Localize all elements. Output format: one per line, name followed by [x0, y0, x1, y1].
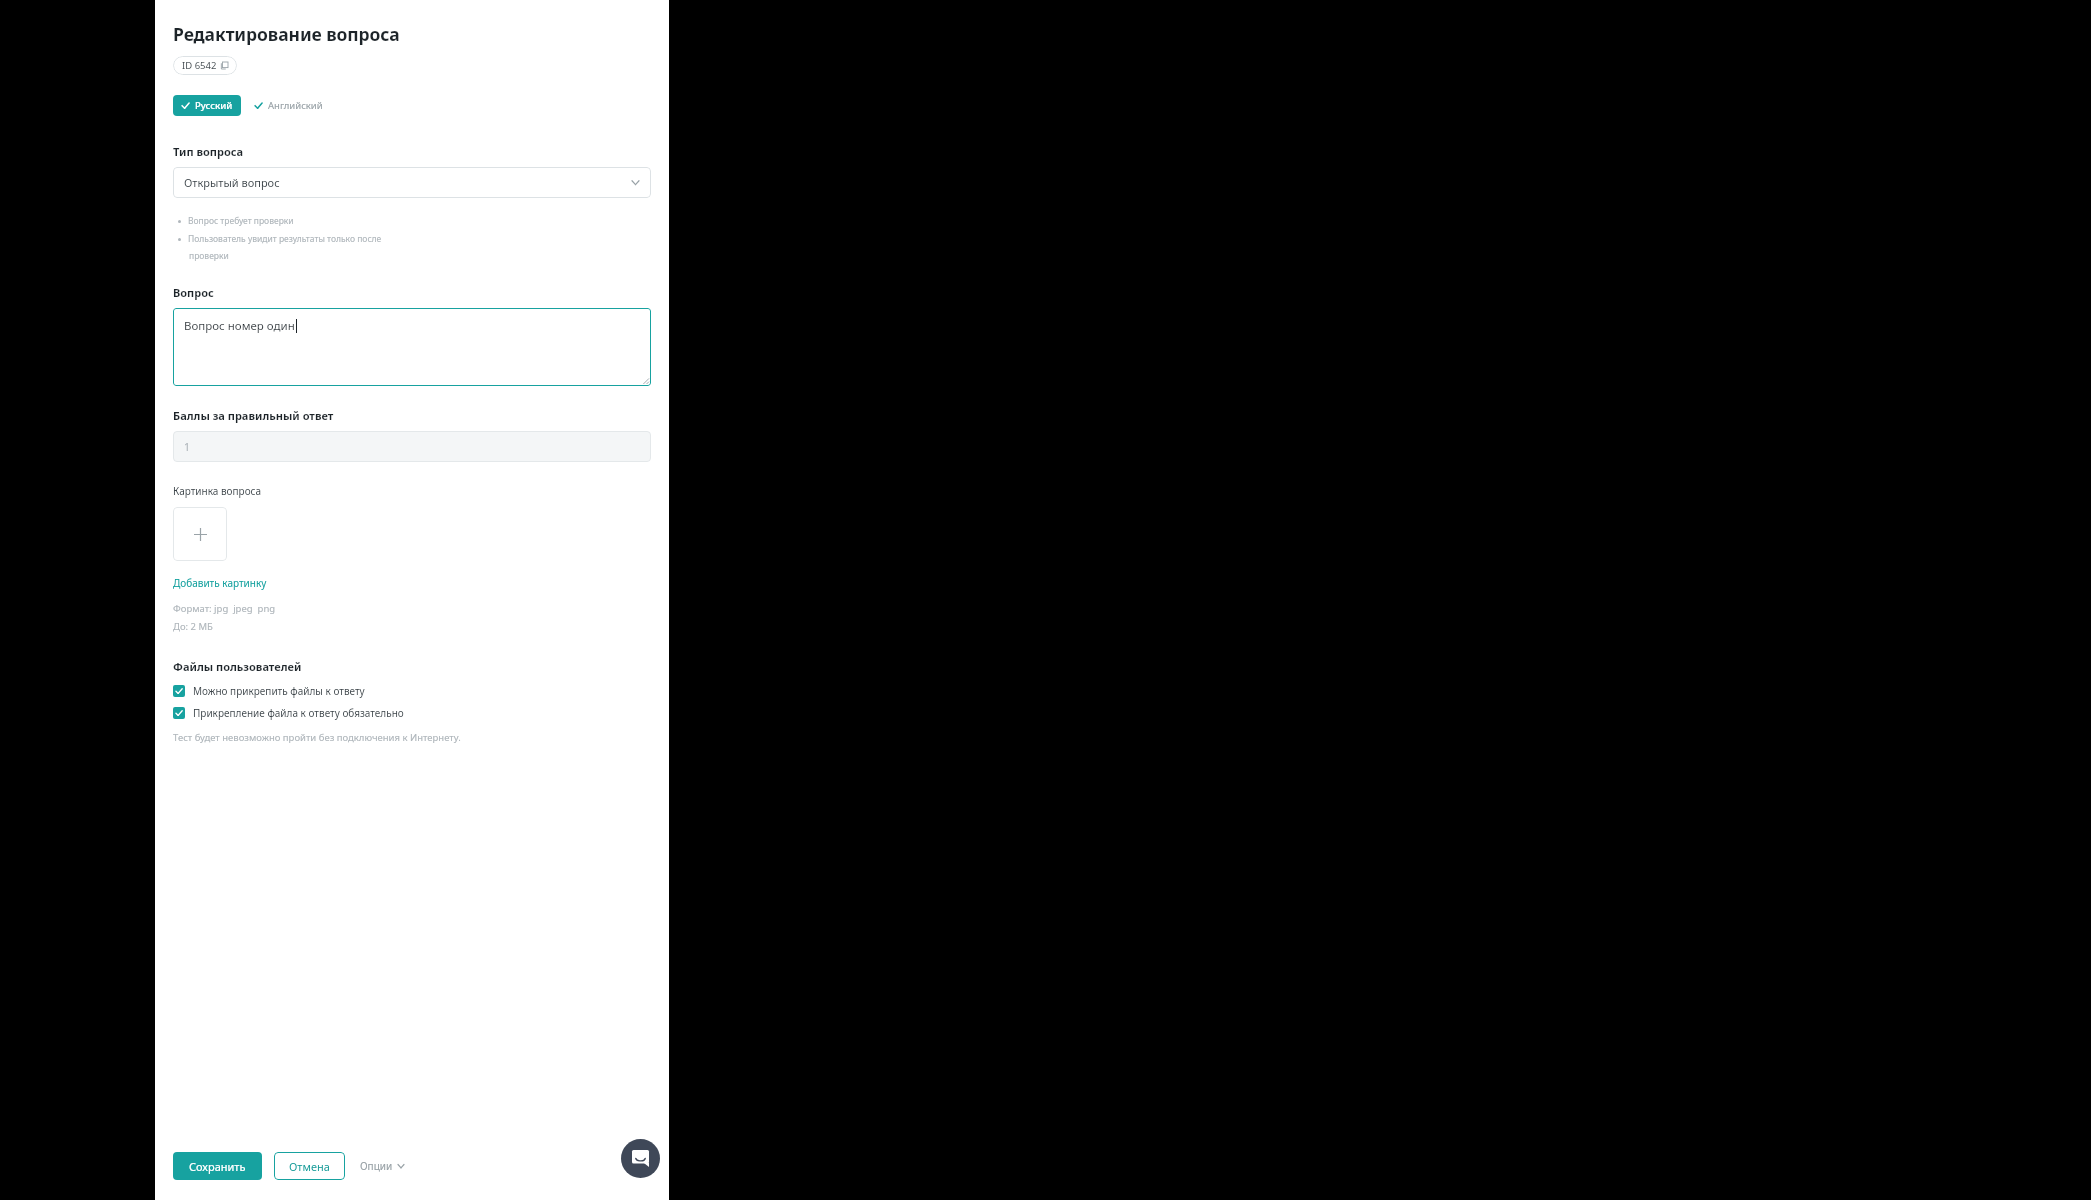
staticText: Можно прикрепить файлы к ответу	[193, 684, 365, 698]
button[interactable]: Английский	[252, 95, 325, 116]
staticText: 1	[184, 440, 191, 454]
button[interactable]: Отмена	[274, 1152, 345, 1180]
button[interactable]: Сохранить	[173, 1152, 262, 1180]
staticText: Прикрепление файла к ответу обязательно	[193, 706, 404, 720]
staticText: Баллы за правильный ответ	[173, 408, 334, 423]
staticText: проверки	[189, 250, 229, 262]
button[interactable]: Добавить картинку	[173, 507, 227, 561]
staticText: Картинка вопроса	[173, 484, 262, 498]
staticText: ID 6542	[182, 59, 217, 72]
button[interactable]: ID 6542	[173, 56, 237, 75]
staticText: Формат: jpg jpeg png	[173, 602, 276, 615]
staticText: Редактирование вопроса	[173, 22, 400, 46]
button[interactable]: Прикрепление файла к ответу обязательно	[173, 706, 651, 720]
button[interactable]: Открыть чат поддержки	[621, 1139, 660, 1178]
staticText: Пользователь увидит результаты только по…	[188, 233, 382, 245]
button[interactable]: Добавить картинку	[173, 576, 267, 590]
button[interactable]: Открытый вопрос	[173, 167, 651, 198]
staticText: Вопрос	[173, 285, 214, 300]
staticText: Отмена	[289, 1159, 330, 1174]
staticText: Английский	[268, 99, 323, 112]
staticText: Опции	[360, 1159, 393, 1173]
button[interactable]: 1	[173, 431, 651, 462]
button[interactable]: Русский	[173, 95, 241, 116]
button[interactable]: Опции	[354, 1153, 410, 1179]
staticText: Русский	[195, 99, 233, 112]
staticText: Тест будет невозможно пройти без подключ…	[173, 731, 461, 744]
staticText: Тип вопроса	[173, 144, 244, 159]
button[interactable]: Вопрос номер один	[173, 308, 651, 386]
staticText: Добавить картинку	[173, 576, 267, 590]
staticText: Вопрос требует проверки	[188, 215, 294, 227]
staticText: Файлы пользователей	[173, 659, 302, 674]
staticText: До: 2 МБ	[173, 620, 213, 633]
button[interactable]: Можно прикрепить файлы к ответу	[173, 684, 651, 698]
staticText: Сохранить	[189, 1159, 246, 1174]
staticText: Открытый вопрос	[184, 175, 280, 190]
staticText: Вопрос номер один	[184, 318, 295, 334]
